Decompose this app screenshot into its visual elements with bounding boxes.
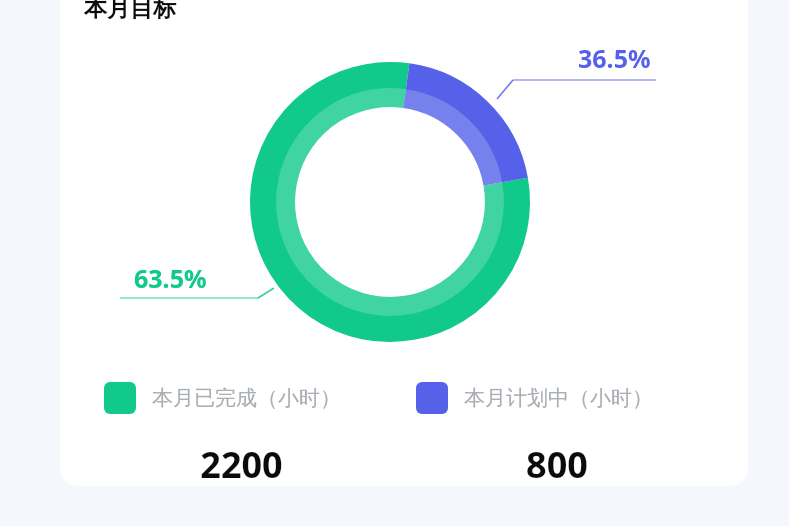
button[interactable]: 2200 [104,440,416,489]
staticText: 本月计划中（小时） [464,385,653,411]
button[interactable]: 本月计划中（小时） [416,378,729,418]
button[interactable]: 800 [416,440,729,489]
staticText: 36.5% [578,41,651,75]
other: 本月目标 环形图 已完成 63.5% 计划中 36.5% [0,0,789,526]
staticText: 本月目标 [84,0,176,23]
staticText: 63.5% [134,261,207,295]
staticText: 2200 [200,440,283,489]
button[interactable]: 本月目标 [84,0,176,23]
staticText: 800 [526,440,588,489]
staticText: 本月已完成（小时） [152,385,341,411]
button[interactable]: 本月已完成（小时） [104,378,416,418]
